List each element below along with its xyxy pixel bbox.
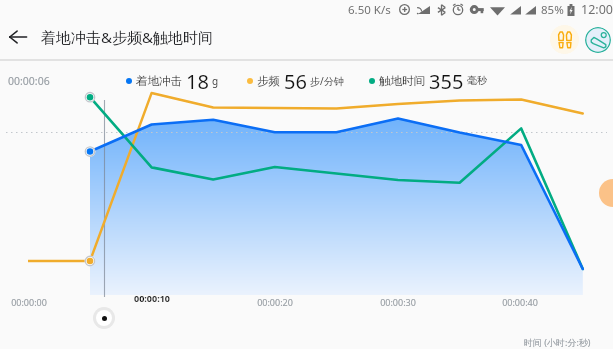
staticText: 步频 (257, 74, 280, 88)
staticText: 355 (429, 68, 464, 93)
staticText: 毫秒 (467, 74, 487, 87)
staticText: 00:00:00 (4, 296, 54, 308)
staticText: 00:00:20 (250, 296, 300, 308)
button[interactable]: Scrub handle (93, 307, 115, 329)
staticText: 18 (186, 68, 209, 93)
staticText: 00:00:10 (127, 292, 177, 304)
staticText: 00:00:30 (373, 296, 423, 308)
staticText: 时间 (小时:分:秒) (524, 336, 591, 348)
button[interactable]: Back (0, 19, 36, 55)
staticText: 着地冲击 (136, 74, 182, 88)
staticText: 6.50 K/s (348, 2, 391, 18)
staticText: 00:00:06 (8, 74, 50, 88)
staticText: 56 (284, 68, 307, 93)
staticText: 着地冲击&步频&触地时间 (41, 27, 213, 47)
staticText: 步/分钟 (310, 74, 344, 88)
staticText: 触地时间 (379, 74, 425, 88)
staticText: 00:00:40 (495, 296, 545, 308)
button[interactable]: Footsteps (550, 25, 579, 54)
staticText: 12:00 (581, 1, 613, 18)
button[interactable]: Running shoe (585, 27, 611, 53)
staticText: 85% (541, 2, 564, 18)
staticText: g (212, 74, 219, 88)
